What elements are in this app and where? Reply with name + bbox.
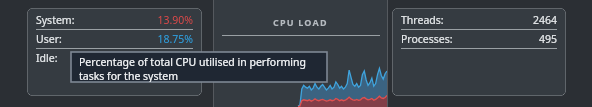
button[interactable]: Threads:	[401, 11, 557, 30]
button[interactable]: CPU LOAD	[214, 0, 387, 107]
button[interactable]: Idle:	[36, 49, 193, 67]
staticText: User:	[36, 32, 62, 46]
staticText: System:	[36, 13, 75, 27]
button[interactable]: System:	[36, 11, 193, 30]
staticText: 2464	[532, 13, 557, 27]
button[interactable]: User:	[36, 30, 193, 49]
staticText: 495	[538, 32, 557, 46]
button[interactable]: System:	[27, 8, 202, 96]
button[interactable]: Threads:	[392, 8, 566, 96]
staticText: Percentage of total CPU utilised in perf…	[79, 55, 306, 69]
button[interactable]: Tooltip: Percentage of total CPU utilise…	[71, 52, 327, 82]
staticText: Threads:	[401, 13, 444, 27]
staticText: CPU LOAD	[273, 16, 328, 28]
staticText: Idle:	[36, 51, 58, 65]
staticText: 13.90%	[157, 13, 193, 27]
staticText: tasks for the system	[79, 69, 178, 82]
staticText: 67.33%	[157, 51, 193, 65]
staticText: 18.75%	[157, 32, 193, 46]
staticText: Processes:	[401, 32, 453, 46]
button[interactable]: Processes:	[401, 30, 557, 49]
